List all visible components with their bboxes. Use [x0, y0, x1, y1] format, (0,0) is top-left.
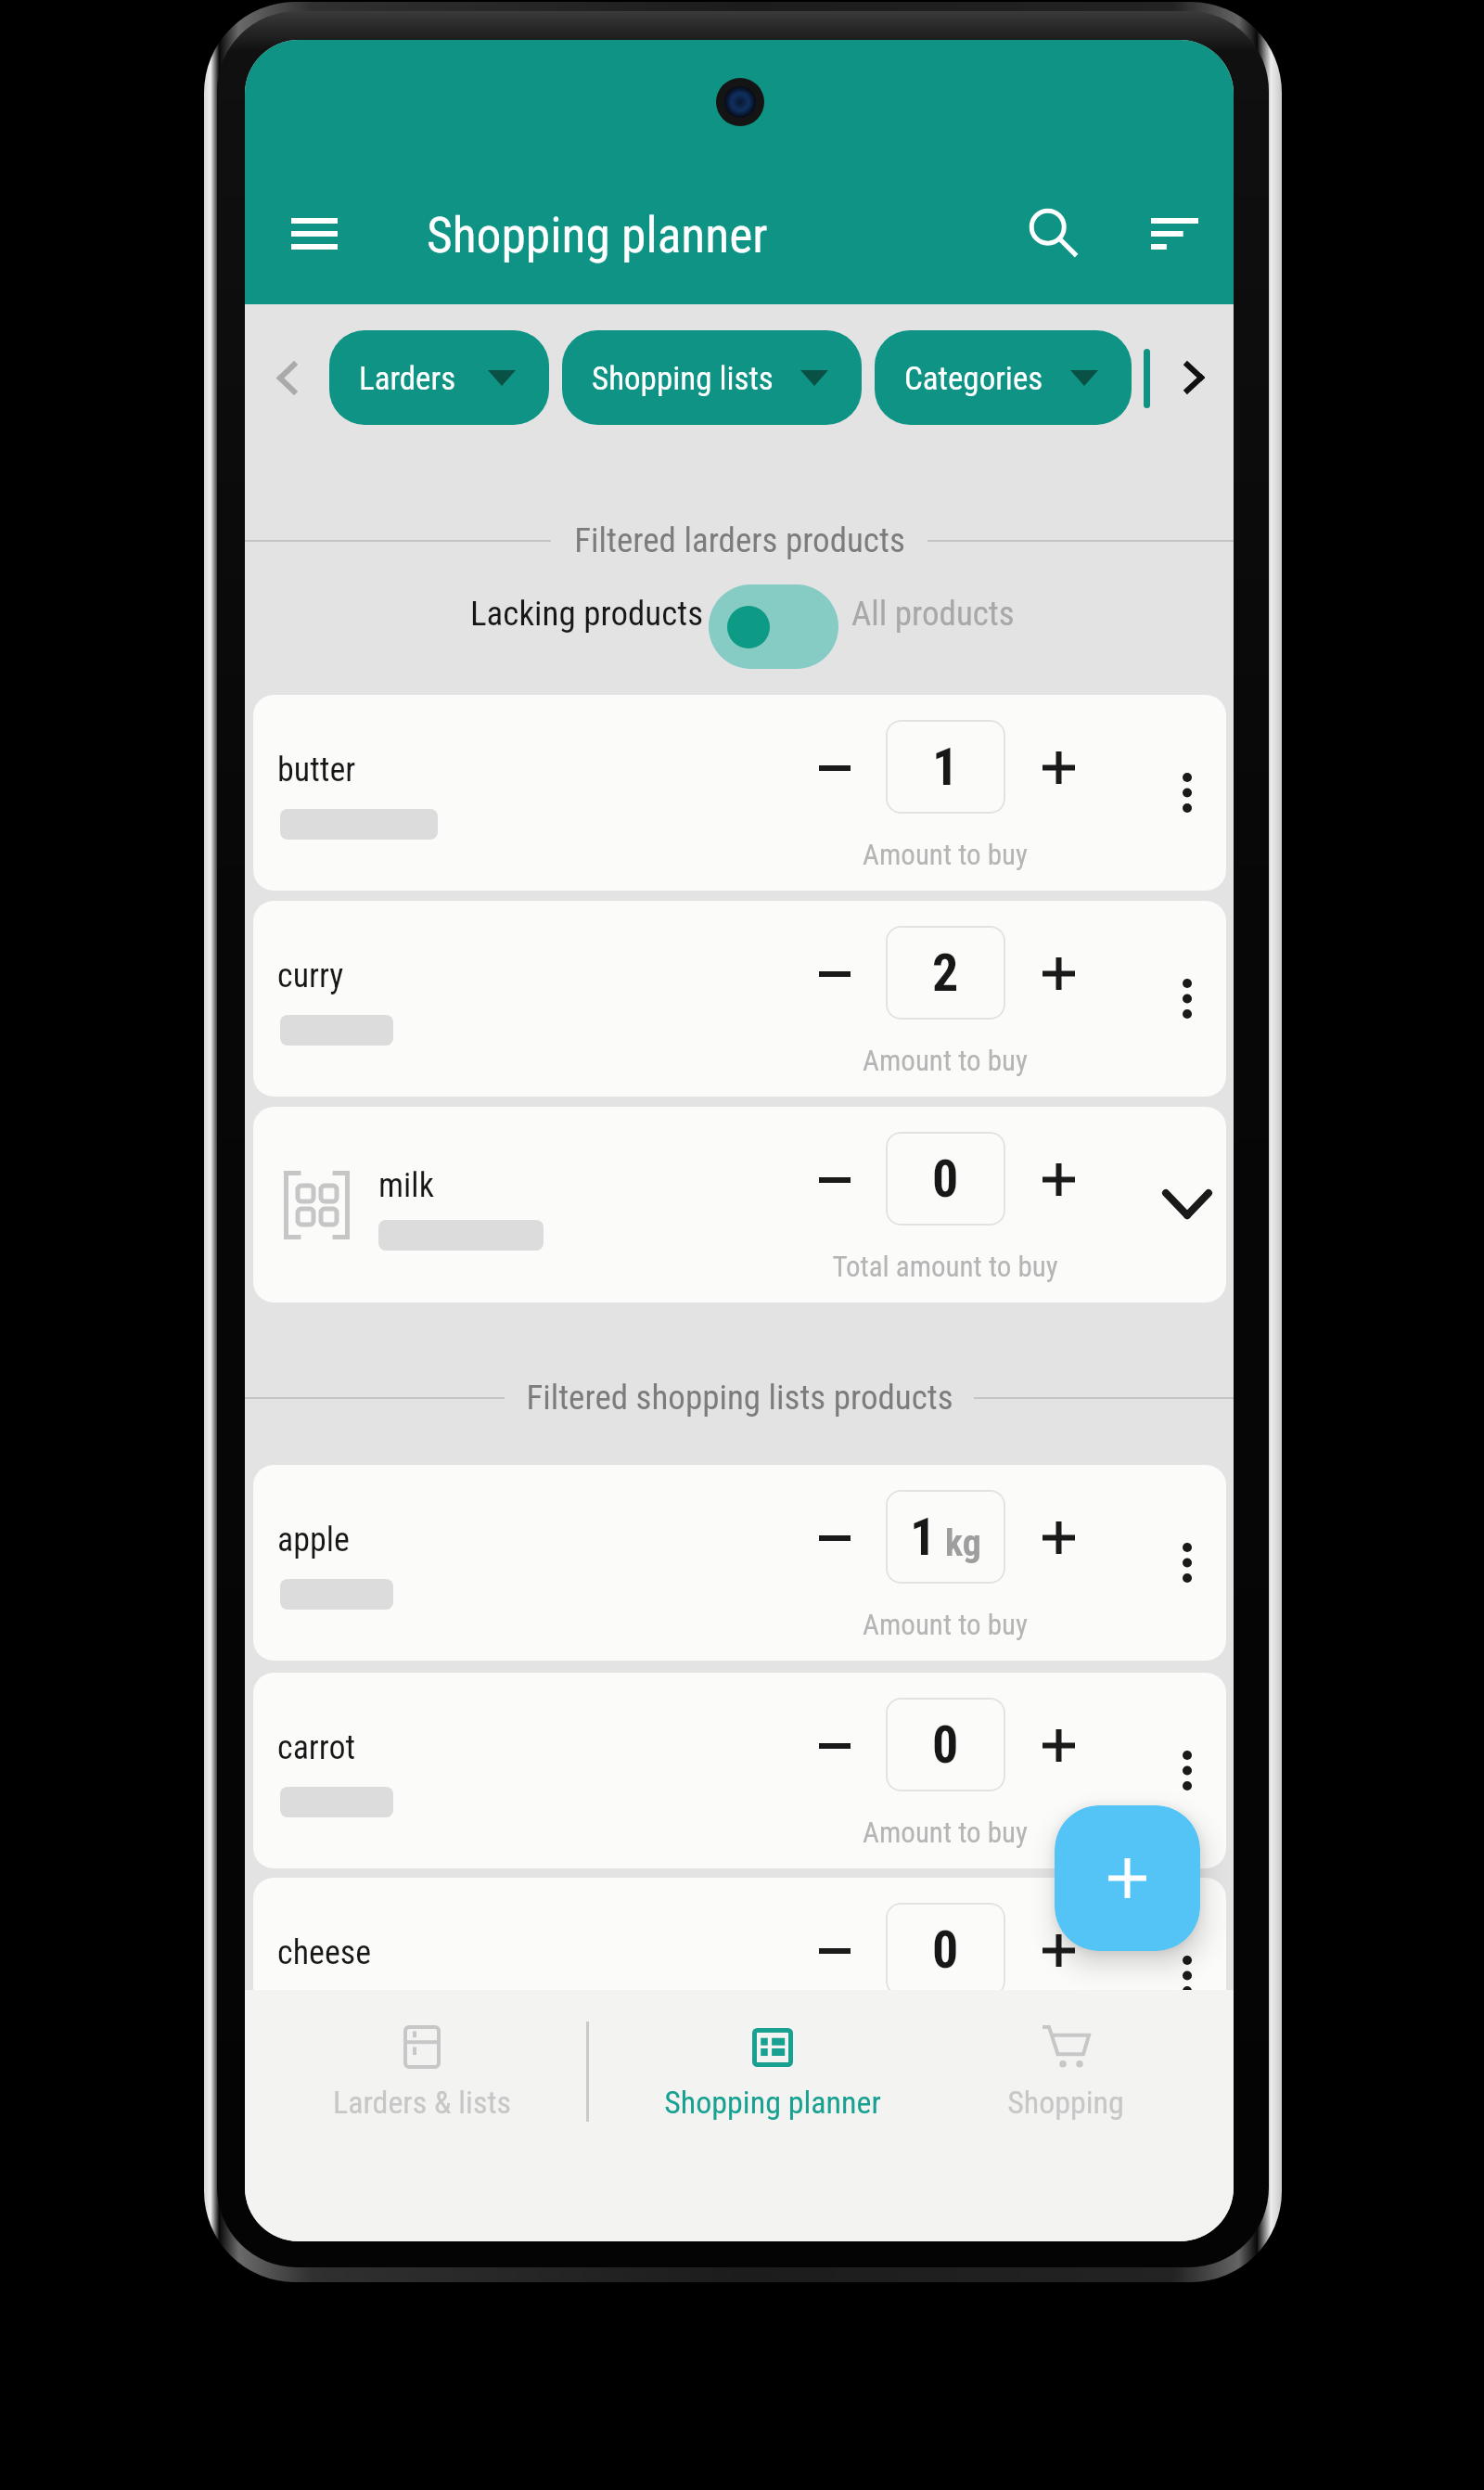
- staticText: All products: [851, 594, 1015, 634]
- button[interactable]: More options: [1144, 1726, 1226, 1814]
- staticText: Shopping lists: [592, 360, 774, 398]
- button[interactable]: Sort: [1130, 189, 1219, 278]
- button[interactable]: Decrease: [793, 1704, 876, 1788]
- staticText: Amount to buy: [863, 1816, 1028, 1849]
- staticText: Shopping planner: [664, 2084, 881, 2121]
- staticText: carrot: [277, 1728, 356, 1767]
- button[interactable]: Decrease: [793, 1138, 876, 1222]
- staticText: Lacking products: [470, 594, 704, 634]
- button[interactable]: Decrease: [793, 932, 876, 1016]
- staticText: Total amount to buy: [832, 1250, 1058, 1283]
- button[interactable]: carrot: [253, 1673, 1226, 1868]
- button[interactable]: Shopping: [954, 1990, 1177, 2176]
- staticText: Amount to buy: [863, 1044, 1028, 1077]
- staticText: milk: [378, 1166, 434, 1205]
- staticText: 0: [932, 1919, 959, 1981]
- staticText: Categories: [904, 360, 1043, 398]
- staticText: apple: [277, 1521, 350, 1559]
- button[interactable]: cheese: [253, 1878, 1226, 2073]
- button[interactable]: curry: [253, 901, 1226, 1097]
- button[interactable]: Next: [1170, 330, 1218, 425]
- button[interactable]: Expand: [1144, 1161, 1226, 1248]
- button[interactable]: Larders: [329, 330, 549, 425]
- staticText: Shopping: [1007, 2084, 1124, 2121]
- staticText: 0: [932, 1714, 959, 1776]
- staticText: Shopping planner: [427, 206, 768, 264]
- staticText: 1: [910, 1507, 937, 1568]
- button[interactable]: More options: [1144, 955, 1226, 1042]
- staticText: cheese: [277, 1933, 372, 1972]
- staticText: Amount to buy: [863, 838, 1028, 871]
- button[interactable]: Shopping planner: [596, 1990, 949, 2176]
- button[interactable]: Decrease: [793, 726, 876, 810]
- staticText: Larders & lists: [333, 2084, 511, 2121]
- button[interactable]: Shopping lists: [562, 330, 862, 425]
- button[interactable]: More options: [1144, 1519, 1226, 1606]
- staticText: butter: [277, 751, 356, 789]
- button[interactable]: Increase: [1017, 931, 1100, 1015]
- button[interactable]: Increase: [1017, 1703, 1100, 1787]
- staticText: 1: [932, 737, 959, 798]
- button[interactable]: Larders & lists: [255, 1990, 589, 2176]
- button[interactable]: [709, 584, 838, 669]
- button[interactable]: Increase: [1017, 1908, 1100, 1992]
- staticText: Amount to buy: [863, 1608, 1028, 1641]
- button[interactable]: Increase: [1017, 725, 1100, 809]
- button[interactable]: Previous: [264, 330, 309, 425]
- staticText: Filtered shopping lists products: [526, 1378, 953, 1418]
- button[interactable]: More options: [1144, 749, 1226, 836]
- button[interactable]: More options: [1144, 1932, 1226, 2019]
- staticText: 2: [932, 943, 959, 1004]
- staticText: Larders: [359, 360, 456, 398]
- button[interactable]: Add: [1055, 1805, 1200, 1951]
- button[interactable]: Increase: [1017, 1137, 1100, 1221]
- button[interactable]: Menu: [270, 189, 359, 278]
- button[interactable]: Increase: [1017, 1495, 1100, 1579]
- staticText: kg: [945, 1521, 981, 1565]
- button[interactable]: apple: [253, 1465, 1226, 1661]
- button[interactable]: Decrease: [793, 1909, 876, 1993]
- button[interactable]: milk: [253, 1107, 1226, 1303]
- staticText: curry: [277, 956, 344, 995]
- button[interactable]: Search: [1010, 189, 1099, 278]
- staticText: 0: [932, 1149, 959, 1210]
- button[interactable]: Decrease: [793, 1496, 876, 1580]
- button[interactable]: Categories: [875, 330, 1132, 425]
- staticText: Filtered larders products: [574, 520, 905, 560]
- button[interactable]: butter: [253, 695, 1226, 891]
